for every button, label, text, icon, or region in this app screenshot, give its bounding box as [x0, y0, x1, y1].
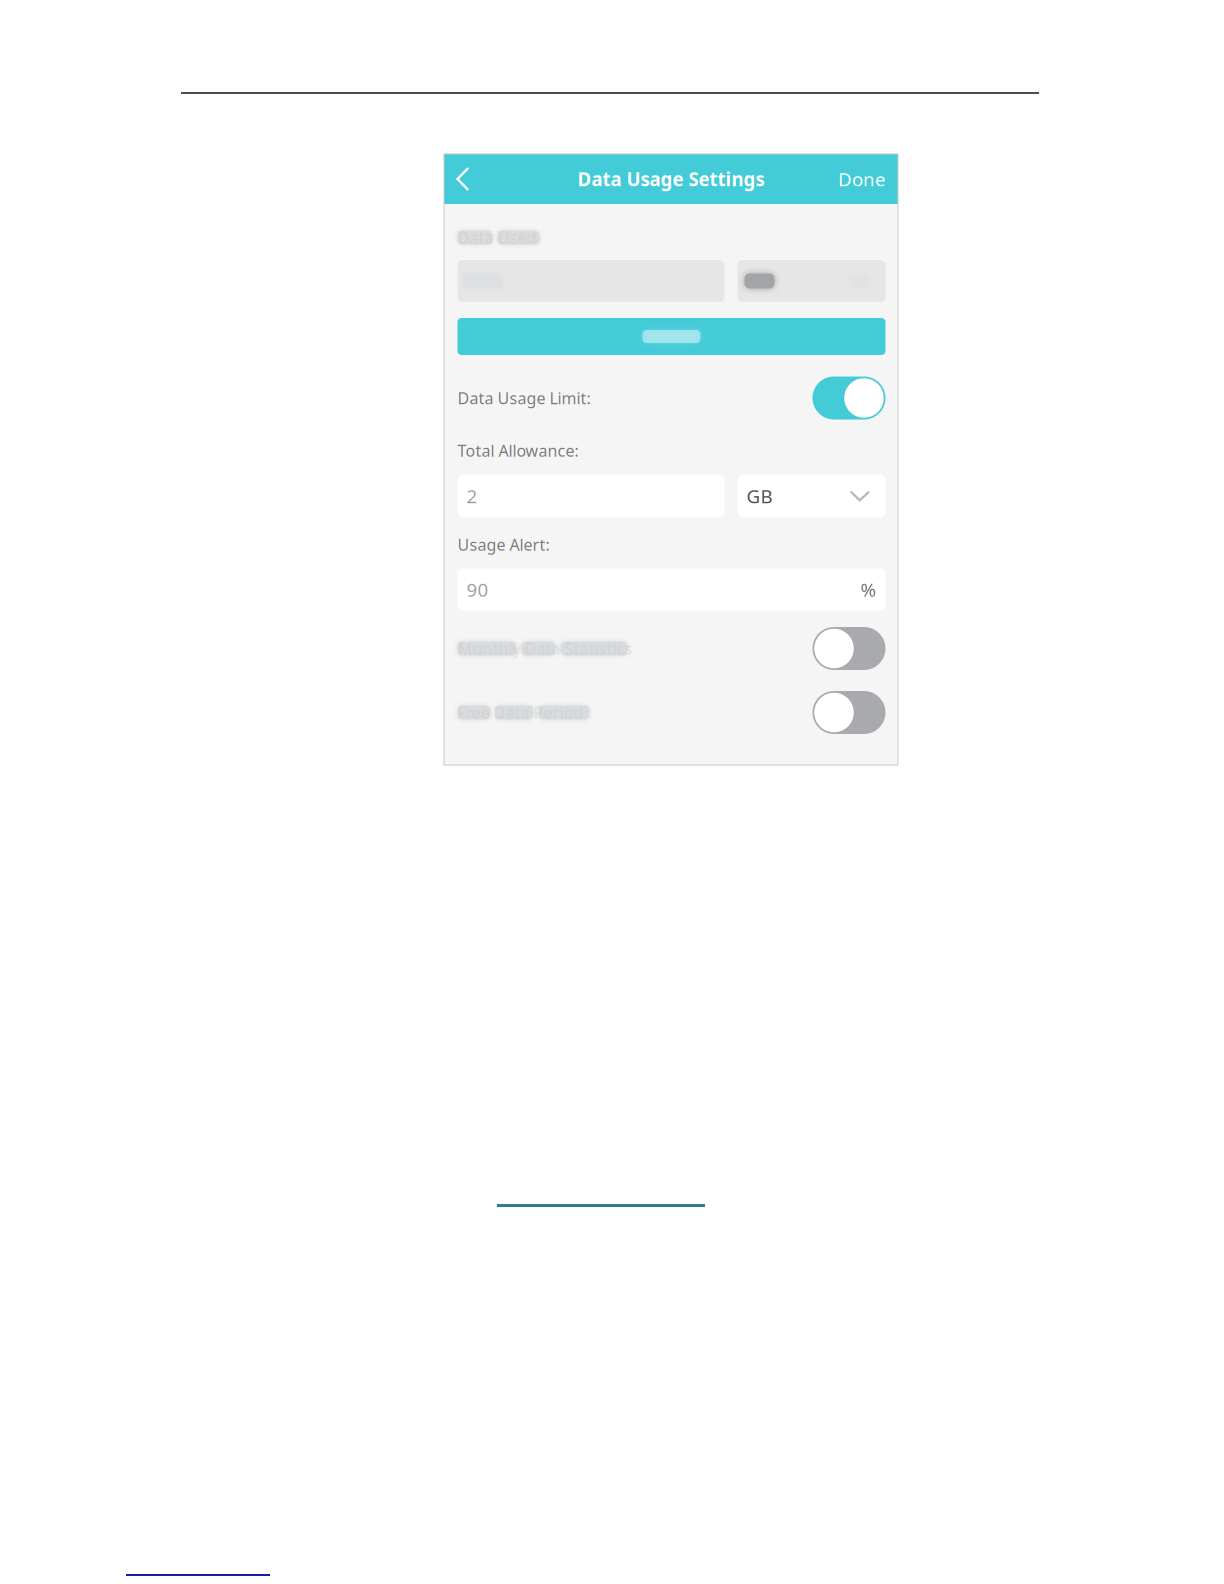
staticText: 90: [466, 577, 488, 602]
button[interactable]: Free Data Period: [812, 691, 885, 734]
staticText: Free Data Period: [457, 702, 583, 723]
button[interactable]: [457, 318, 885, 355]
button[interactable]: Data Usage Limit: [812, 376, 885, 419]
button[interactable]: Monthly Data Statistics: [812, 627, 885, 670]
staticText: Total Allowance:: [457, 440, 578, 461]
button[interactable]: Unit: GB: [737, 474, 885, 517]
staticText: 2: [466, 484, 477, 508]
staticText: GB: [746, 484, 772, 508]
staticText: Data Used: [457, 227, 536, 248]
button[interactable]: Done: [838, 154, 898, 204]
staticText: Usage Alert:: [457, 534, 549, 555]
button[interactable]: Back: [444, 154, 494, 204]
staticText: Done: [838, 167, 886, 191]
staticText: %: [860, 577, 876, 602]
staticText: Data Usage Limit:: [457, 387, 590, 409]
staticText: Data Usage Settings: [577, 167, 764, 191]
staticText: Monthly Data Statistics: [457, 638, 632, 659]
